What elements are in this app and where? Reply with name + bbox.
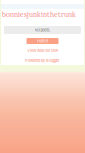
staticText: bonniesjunkinthetrunk xyxy=(2,10,76,19)
staticText: Powered by Blogger xyxy=(25,58,60,63)
button[interactable]: Home xyxy=(26,38,58,44)
staticText: Home xyxy=(37,39,48,43)
staticText: View web version xyxy=(27,48,58,53)
button[interactable]: View web version xyxy=(27,48,58,53)
staticText: No posts. xyxy=(34,28,50,32)
